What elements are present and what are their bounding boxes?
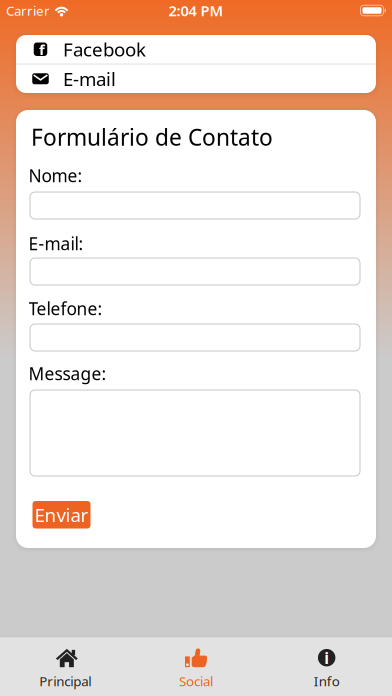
- staticText: Nome:: [28, 164, 82, 187]
- button[interactable]: i: [261, 637, 392, 690]
- staticText: Enviar: [34, 502, 88, 527]
- staticText: E-mail: [63, 66, 116, 91]
- staticText: f: [39, 40, 45, 59]
- staticText: Principal: [39, 672, 91, 690]
- staticText: Carrier: [6, 2, 50, 19]
- staticText: Formulário de Contato: [31, 122, 273, 152]
- button[interactable]: Enviar: [32, 501, 90, 528]
- button[interactable]: Social: [131, 637, 261, 690]
- staticText: 2:04 PM: [168, 1, 223, 20]
- staticText: Facebook: [63, 37, 146, 62]
- button[interactable]: Principal: [0, 637, 131, 690]
- button[interactable]: f: [16, 35, 376, 63]
- staticText: E-mail:: [28, 232, 83, 255]
- button[interactable]: E-mail: [16, 64, 376, 93]
- staticText: Telefone:: [28, 297, 102, 320]
- staticText: Info: [314, 672, 340, 690]
- staticText: i: [324, 647, 329, 668]
- staticText: Social: [179, 672, 213, 690]
- staticText: Message:: [28, 362, 106, 385]
